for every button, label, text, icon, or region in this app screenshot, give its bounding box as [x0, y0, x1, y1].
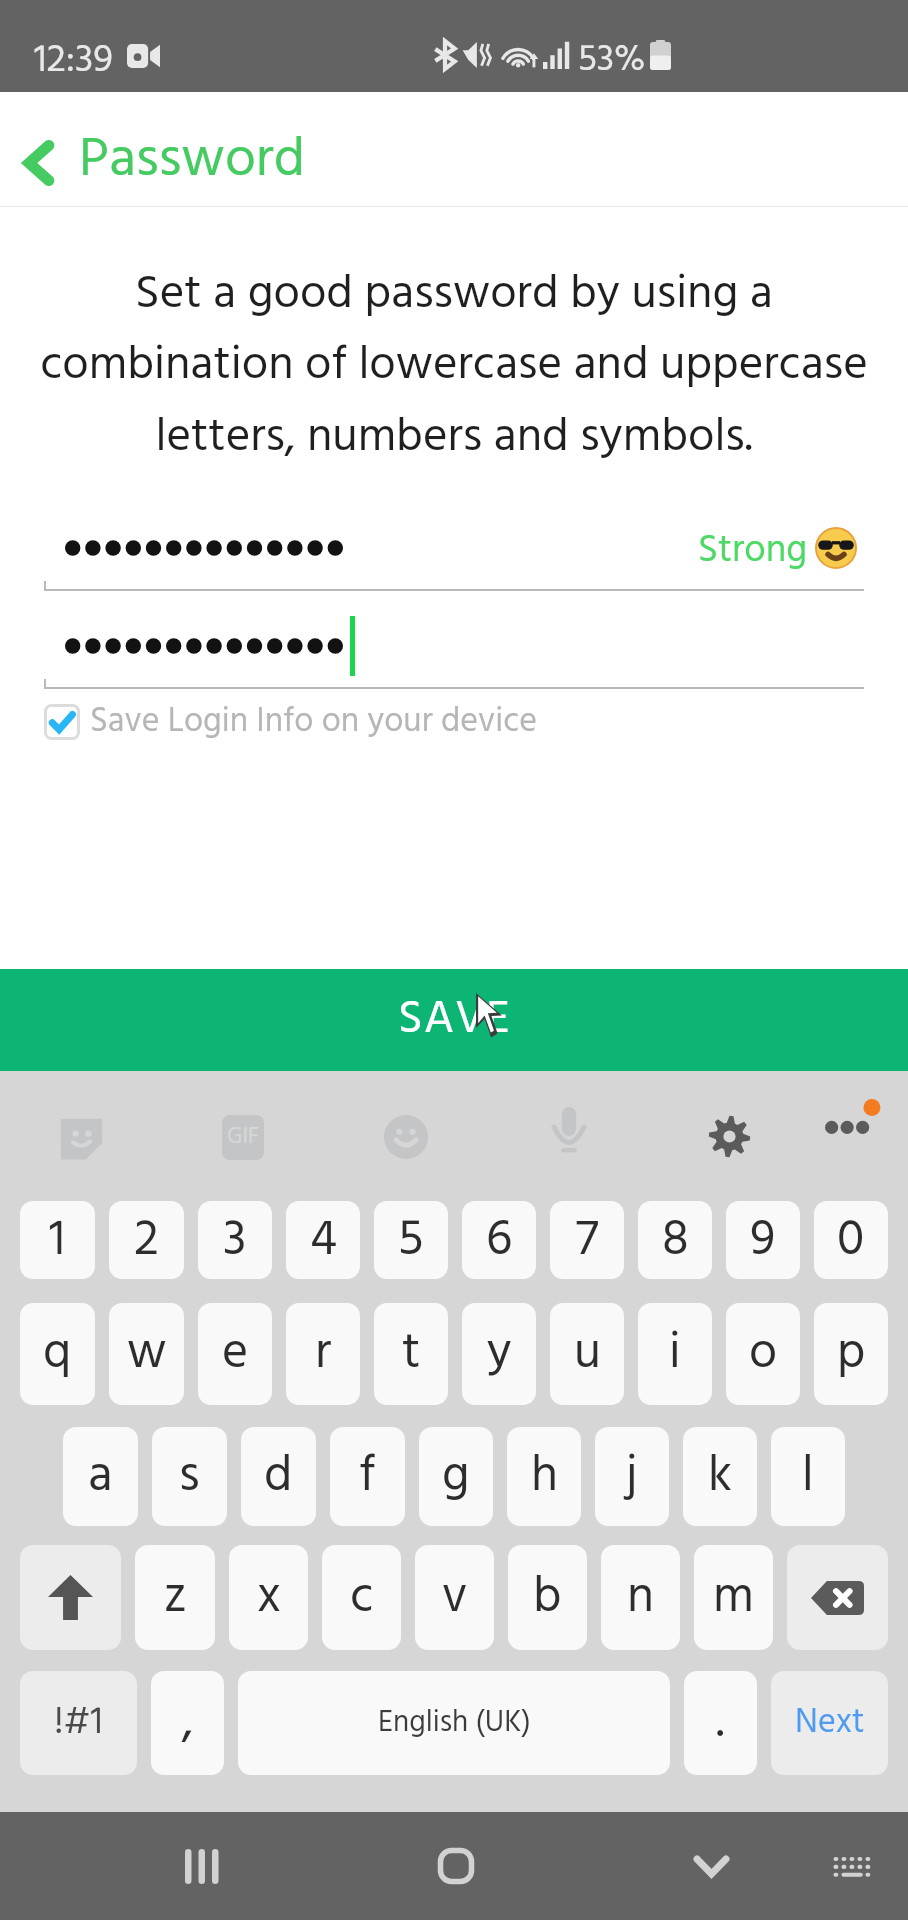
staticText: 5	[398, 1201, 424, 1279]
button[interactable]: m	[694, 1545, 773, 1650]
button[interactable]: Hide keyboard	[672, 1827, 750, 1905]
button[interactable]: z	[135, 1545, 215, 1650]
button[interactable]: ,	[151, 1671, 224, 1775]
staticText: v	[442, 1558, 468, 1638]
button[interactable]: d	[241, 1427, 316, 1526]
staticText: 2	[134, 1201, 159, 1279]
staticText: d	[264, 1437, 293, 1517]
button[interactable]: .	[684, 1671, 757, 1775]
button[interactable]: Next	[771, 1671, 888, 1775]
staticText: SAVE	[398, 982, 511, 1057]
staticText: h	[531, 1437, 558, 1517]
button[interactable]: Stickers	[48, 1105, 114, 1171]
staticText: b	[533, 1558, 562, 1638]
staticText: a	[88, 1437, 113, 1517]
button[interactable]: 3	[198, 1201, 272, 1279]
staticText: s	[179, 1437, 200, 1517]
button[interactable]: GIF	[210, 1104, 276, 1170]
staticText: l	[802, 1437, 814, 1517]
button[interactable]: 2	[109, 1201, 184, 1279]
staticText: q	[43, 1314, 72, 1394]
staticText: t	[402, 1314, 421, 1394]
staticText: p	[837, 1314, 866, 1394]
button[interactable]: x	[229, 1545, 308, 1650]
staticText: w	[127, 1314, 167, 1394]
staticText: m	[713, 1558, 754, 1638]
staticText: Next	[795, 1696, 865, 1750]
button[interactable]: a	[63, 1427, 138, 1526]
staticText: 3	[223, 1201, 247, 1279]
button[interactable]: p	[814, 1303, 888, 1405]
button[interactable]: Backspace	[787, 1545, 888, 1650]
staticText: n	[627, 1558, 654, 1638]
button[interactable]: 5	[374, 1201, 448, 1279]
staticText: ,	[182, 1683, 194, 1763]
staticText: .	[716, 1683, 725, 1763]
staticText: 9	[750, 1201, 776, 1279]
staticText: u	[574, 1314, 601, 1394]
button[interactable]: v	[415, 1545, 494, 1650]
button[interactable]: q	[20, 1303, 95, 1405]
button[interactable]: Shift	[20, 1545, 121, 1650]
button[interactable]: 1	[20, 1201, 95, 1279]
button[interactable]: h	[507, 1427, 581, 1526]
button[interactable]: y	[462, 1303, 536, 1405]
button[interactable]: Home	[417, 1827, 495, 1905]
staticText: 0	[837, 1201, 865, 1279]
staticText: 53%	[578, 31, 646, 90]
button[interactable]: w	[109, 1303, 184, 1405]
button[interactable]: f	[330, 1427, 405, 1526]
button[interactable]: r	[286, 1303, 360, 1405]
button[interactable]: c	[322, 1545, 401, 1650]
button[interactable]: Save Login Info on your device	[44, 691, 537, 753]
button[interactable]: 9	[726, 1201, 800, 1279]
staticText: r	[315, 1314, 332, 1394]
staticText: Save Login Info on your device	[90, 695, 537, 749]
button[interactable]: Settings	[696, 1103, 762, 1169]
button[interactable]: English (UK)	[238, 1671, 670, 1775]
button[interactable]: n	[601, 1545, 680, 1650]
staticText: g	[442, 1437, 470, 1517]
button[interactable]: k	[683, 1427, 757, 1526]
button[interactable]: Keyboard layout	[812, 1827, 890, 1905]
staticText: Set a good password by using a combinati…	[34, 257, 874, 476]
staticText: c	[350, 1558, 374, 1638]
button[interactable]: SAVE	[0, 969, 908, 1071]
button[interactable]: l	[771, 1427, 845, 1526]
staticText: 4	[310, 1201, 337, 1279]
staticText: 1	[49, 1201, 66, 1279]
staticText: k	[708, 1437, 732, 1517]
button[interactable]: 7	[550, 1201, 624, 1279]
button[interactable]: 6	[462, 1201, 536, 1279]
staticText: z	[164, 1558, 187, 1638]
button[interactable]: Strong	[65, 518, 856, 578]
staticText: 6	[486, 1201, 513, 1279]
button[interactable]	[65, 616, 862, 676]
button[interactable]: 0	[814, 1201, 888, 1279]
staticText: j	[626, 1437, 638, 1517]
button[interactable]: g	[419, 1427, 493, 1526]
button[interactable]: Recents	[164, 1827, 242, 1905]
button[interactable]: j	[595, 1427, 669, 1526]
staticText: o	[749, 1314, 778, 1394]
staticText: i	[669, 1314, 681, 1394]
button[interactable]: b	[508, 1545, 587, 1650]
button[interactable]: o	[726, 1303, 800, 1405]
button[interactable]: e	[198, 1303, 272, 1405]
button[interactable]: More options	[818, 1103, 884, 1169]
button[interactable]: s	[152, 1427, 227, 1526]
button[interactable]: Emoji	[373, 1104, 439, 1170]
staticText: !#1	[54, 1693, 103, 1754]
staticText: y	[487, 1314, 512, 1394]
button[interactable]: 4	[286, 1201, 360, 1279]
button[interactable]: t	[374, 1303, 448, 1405]
button[interactable]: Voice input	[536, 1099, 602, 1165]
button[interactable]: !#1	[20, 1671, 137, 1775]
button[interactable]: 8	[638, 1201, 712, 1279]
button[interactable]: Password	[0, 119, 329, 207]
staticText: English (UK)	[378, 1699, 531, 1747]
button[interactable]: i	[638, 1303, 712, 1405]
staticText: 12:39	[34, 30, 113, 92]
staticText: GIF	[227, 1119, 260, 1156]
button[interactable]: u	[550, 1303, 624, 1405]
